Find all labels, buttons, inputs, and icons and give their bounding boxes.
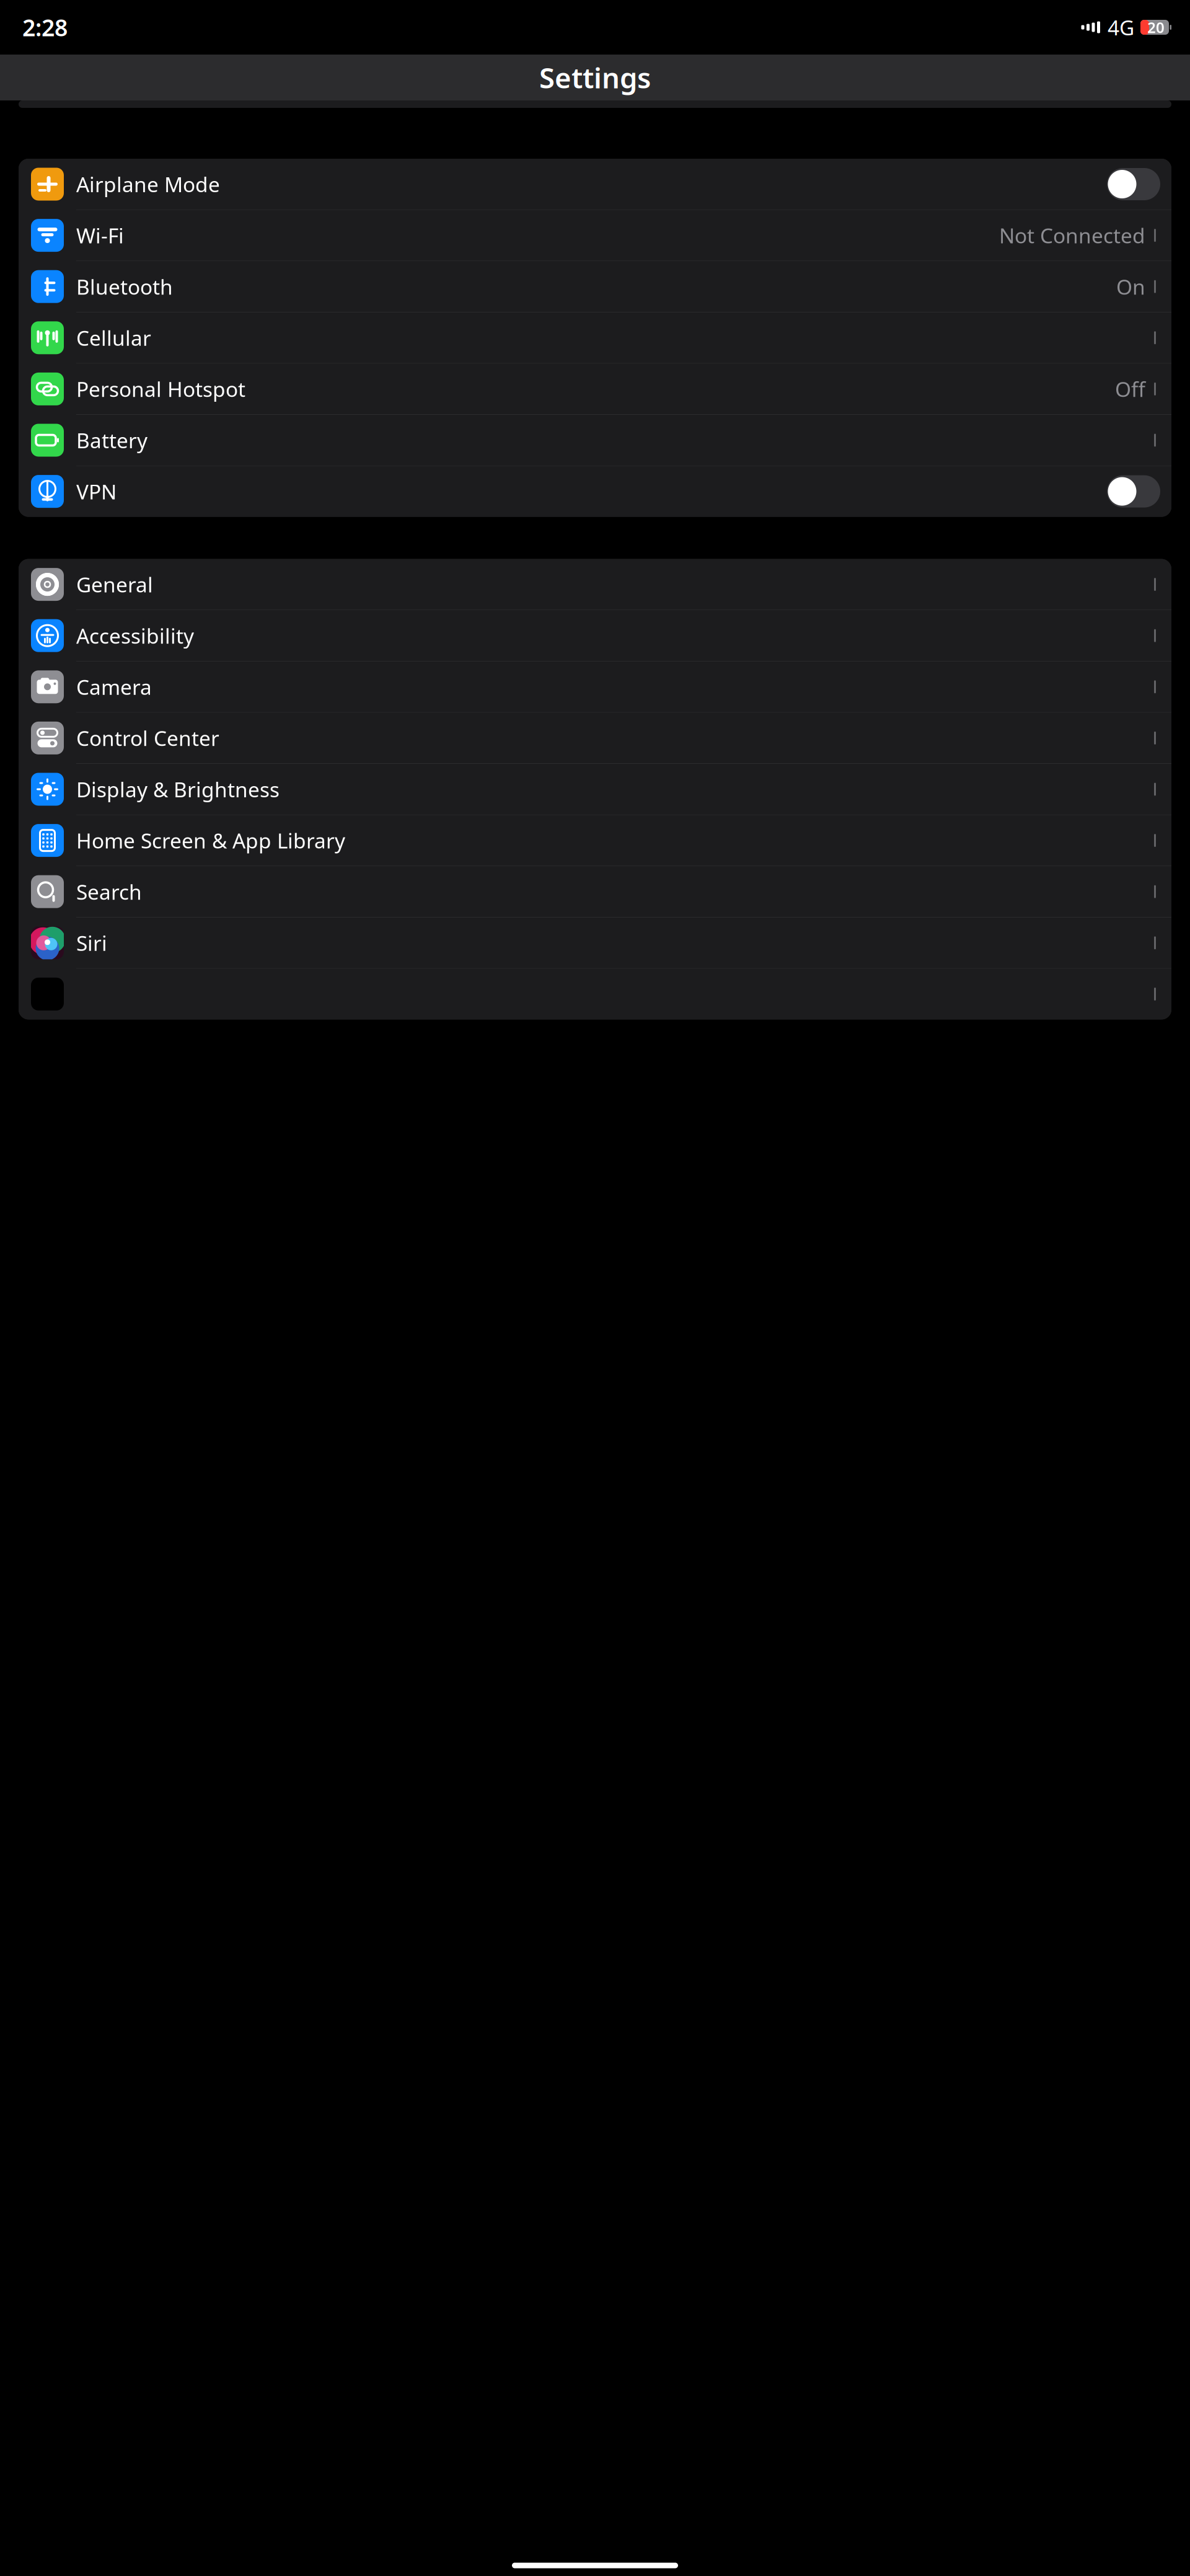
- button[interactable]: Display & Brightness: [19, 764, 1171, 815]
- button[interactable]: Accessibility: [19, 610, 1171, 661]
- staticText: Home Screen & App Library: [76, 827, 345, 854]
- button[interactable]: Wi-Fi: [19, 210, 1171, 261]
- button[interactable]: Airplane Mode: [19, 159, 1171, 210]
- staticText: Control Center: [76, 724, 219, 752]
- button[interactable]: Control Center: [19, 713, 1171, 763]
- staticText: On: [1116, 273, 1145, 300]
- staticText: Accessibility: [76, 622, 194, 649]
- button[interactable]: Home Screen & App Library: [19, 815, 1171, 866]
- staticText: Display & Brightness: [76, 776, 280, 803]
- button[interactable]: Search: [19, 866, 1171, 917]
- staticText: VPN: [76, 478, 117, 505]
- staticText: Search: [76, 878, 142, 905]
- staticText: 20: [1147, 17, 1165, 37]
- button[interactable]: General: [19, 559, 1171, 610]
- staticText: 4G: [1108, 14, 1134, 41]
- staticText: 2:28: [22, 12, 68, 43]
- button[interactable]: [19, 969, 1171, 1019]
- staticText: Airplane Mode: [76, 170, 220, 198]
- staticText: Battery: [76, 426, 148, 454]
- button[interactable]: Bluetooth: [19, 261, 1171, 312]
- button[interactable]: Siri: [19, 917, 1171, 968]
- staticText: Siri: [76, 929, 107, 957]
- staticText: Cellular: [76, 324, 151, 352]
- staticText: Personal Hotspot: [76, 375, 245, 403]
- staticText: Camera: [76, 673, 152, 701]
- staticText: Not Connected: [999, 222, 1145, 249]
- button[interactable]: Personal Hotspot: [19, 364, 1171, 414]
- button[interactable]: Camera: [19, 661, 1171, 712]
- staticText: Bluetooth: [76, 273, 173, 300]
- staticText: Settings: [539, 59, 651, 96]
- staticText: General: [76, 571, 153, 598]
- button[interactable]: Cellular: [19, 312, 1171, 363]
- button[interactable]: Battery: [19, 415, 1171, 466]
- button[interactable]: VPN: [19, 466, 1171, 517]
- staticText: Wi-Fi: [76, 222, 124, 249]
- staticText: Off: [1115, 375, 1145, 403]
